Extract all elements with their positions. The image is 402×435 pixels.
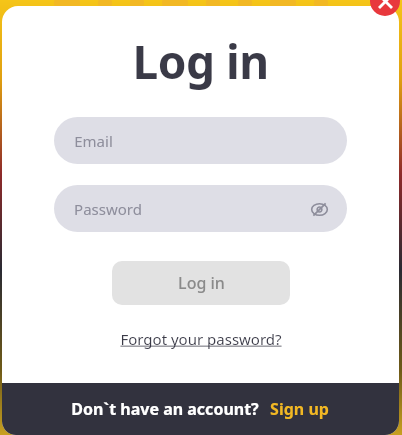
button[interactable]: Close [370,0,400,16]
button[interactable]: Password [54,185,347,232]
staticText: Sign up [270,398,329,420]
staticText: Forgot your password? [120,329,282,349]
button[interactable]: Forgot your password? [116,327,286,351]
button[interactable]: Email [54,117,347,164]
staticText: Don`t have an account? [71,398,259,420]
button[interactable]: Show password [305,195,333,223]
button[interactable]: Log in [112,261,290,305]
staticText: Password [74,199,142,219]
button[interactable]: Sign up [268,396,331,422]
staticText: Log in [178,272,225,294]
staticText: Log in [132,30,269,93]
staticText: Email [74,131,113,151]
